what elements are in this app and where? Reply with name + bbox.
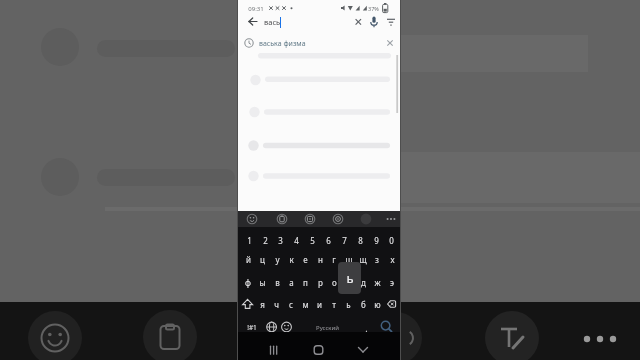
staticText: г xyxy=(332,254,336,265)
button[interactable]: 0 xyxy=(384,234,398,247)
staticText: 1 xyxy=(247,235,252,246)
staticText: вась xyxy=(264,17,281,27)
staticText: о xyxy=(332,277,337,288)
button[interactable]: 7 xyxy=(337,234,351,247)
button[interactable]: э xyxy=(385,276,399,289)
button[interactable]: к xyxy=(284,253,298,266)
staticText: л xyxy=(347,277,352,288)
button[interactable]: 9 xyxy=(369,234,383,247)
button[interactable]: ы xyxy=(255,276,269,289)
staticText: е xyxy=(303,254,308,265)
staticText: 09:31 xyxy=(248,5,264,13)
staticText: д xyxy=(361,277,366,288)
button[interactable]: щ xyxy=(356,253,370,266)
staticText: к xyxy=(289,254,294,265)
button[interactable]: 4 xyxy=(289,234,303,247)
staticText: а xyxy=(289,277,294,288)
button[interactable]: 2 xyxy=(258,234,272,247)
button[interactable] xyxy=(280,320,294,334)
button[interactable]: 1 xyxy=(242,234,256,247)
staticText: х xyxy=(390,254,395,265)
button[interactable]: б xyxy=(356,298,370,311)
button[interactable]: вась xyxy=(264,17,281,27)
staticText: ж xyxy=(374,277,381,288)
button[interactable] xyxy=(265,320,279,334)
button[interactable]: д xyxy=(356,276,370,289)
button[interactable]: ф xyxy=(241,276,255,289)
staticText: 3 xyxy=(278,235,283,246)
button[interactable]: я xyxy=(255,298,269,311)
button[interactable]: у xyxy=(270,253,284,266)
staticText: у xyxy=(275,254,280,265)
button[interactable]: т xyxy=(327,298,341,311)
button[interactable]: о xyxy=(327,276,341,289)
button[interactable]: е xyxy=(298,253,312,266)
button[interactable]: Русский xyxy=(298,321,356,334)
button[interactable]: а xyxy=(284,276,298,289)
button[interactable] xyxy=(365,15,379,29)
staticText: ч xyxy=(274,299,279,310)
staticText: ф xyxy=(245,277,251,288)
staticText: щ xyxy=(359,254,367,265)
staticText: 2 xyxy=(263,235,268,246)
staticText: ш xyxy=(345,254,353,265)
button[interactable]: в xyxy=(270,276,284,289)
button[interactable] xyxy=(310,342,326,358)
button[interactable]: 8 xyxy=(353,234,367,247)
staticText: !#1 xyxy=(247,323,257,332)
staticText: 0 xyxy=(389,235,394,246)
staticText: п xyxy=(303,277,308,288)
button[interactable] xyxy=(238,34,400,51)
staticText: 4 xyxy=(294,235,299,246)
button[interactable]: с xyxy=(284,298,298,311)
button[interactable]: ш xyxy=(342,253,356,266)
button[interactable]: ч xyxy=(269,298,283,311)
button[interactable]: . xyxy=(360,321,372,335)
button[interactable]: л xyxy=(342,276,356,289)
button[interactable] xyxy=(383,15,397,29)
staticText: я xyxy=(260,299,265,310)
button[interactable]: г xyxy=(327,253,341,266)
staticText: б xyxy=(361,299,366,310)
button[interactable] xyxy=(348,15,362,29)
staticText: н xyxy=(318,254,323,265)
button[interactable]: р xyxy=(313,276,327,289)
staticText: 9 xyxy=(374,235,379,246)
staticText: т xyxy=(332,299,336,310)
button[interactable] xyxy=(378,318,394,333)
button[interactable] xyxy=(242,14,258,30)
staticText: васька физма xyxy=(259,39,306,49)
button[interactable] xyxy=(355,342,371,358)
staticText: э xyxy=(390,277,394,288)
button[interactable]: ц xyxy=(255,253,269,266)
staticText: з xyxy=(375,254,379,265)
button[interactable]: и xyxy=(312,298,326,311)
button[interactable]: н xyxy=(313,253,327,266)
staticText: ц xyxy=(260,254,265,265)
staticText: 37% xyxy=(368,5,379,12)
staticText: в xyxy=(275,277,280,288)
button[interactable]: м xyxy=(298,298,312,311)
staticText: ь xyxy=(346,269,354,287)
staticText: 8 xyxy=(358,235,363,246)
button[interactable]: !#1 xyxy=(244,321,260,333)
button[interactable] xyxy=(238,211,400,227)
button[interactable]: й xyxy=(241,253,255,266)
button[interactable]: ю xyxy=(370,298,384,311)
staticText: ю xyxy=(374,299,381,310)
button[interactable]: х xyxy=(385,253,399,266)
button[interactable]: ь xyxy=(341,298,355,311)
button[interactable]: з xyxy=(370,253,384,266)
button[interactable] xyxy=(266,342,282,358)
staticText: Русский xyxy=(316,324,339,332)
staticText: и xyxy=(317,299,322,310)
button[interactable]: ж xyxy=(370,276,384,289)
button[interactable]: 5 xyxy=(305,234,319,247)
button[interactable]: 6 xyxy=(321,234,335,247)
staticText: 7 xyxy=(342,235,347,246)
button[interactable]: 3 xyxy=(273,234,287,247)
staticText: . xyxy=(365,322,368,334)
staticText: м xyxy=(302,299,309,310)
staticText: с xyxy=(289,299,293,310)
button[interactable]: п xyxy=(298,276,312,289)
